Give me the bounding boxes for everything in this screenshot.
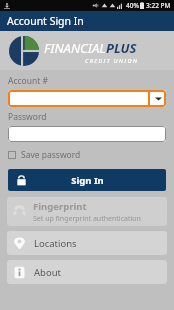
button[interactable]: Show account list [8,90,166,107]
button[interactable]: Locations [7,231,167,255]
staticText: Save password [21,149,81,161]
button[interactable]: Fingerprint [7,197,167,226]
button[interactable]: About [7,260,167,284]
button[interactable]: Show account list [150,90,166,107]
staticText: Set up fingerprint authentication [33,214,141,224]
staticText: About [34,266,61,279]
staticText: 40% [126,1,139,10]
staticText: Account Sign In [7,14,84,28]
button[interactable]: Sign In [8,169,166,191]
staticText: Password [8,111,47,123]
staticText: 3:22 PM [146,1,171,10]
staticText: PLUS [106,39,137,57]
button[interactable]: Save password [8,148,81,162]
staticText: Locations [34,237,77,250]
staticText: Fingerprint [33,200,87,213]
staticText: Account # [8,75,49,87]
staticText: C R E D I T U N I O N [85,57,137,64]
staticText: Sign In [71,174,104,187]
button[interactable] [8,126,166,142]
staticText: FINANCIAL [44,39,106,57]
